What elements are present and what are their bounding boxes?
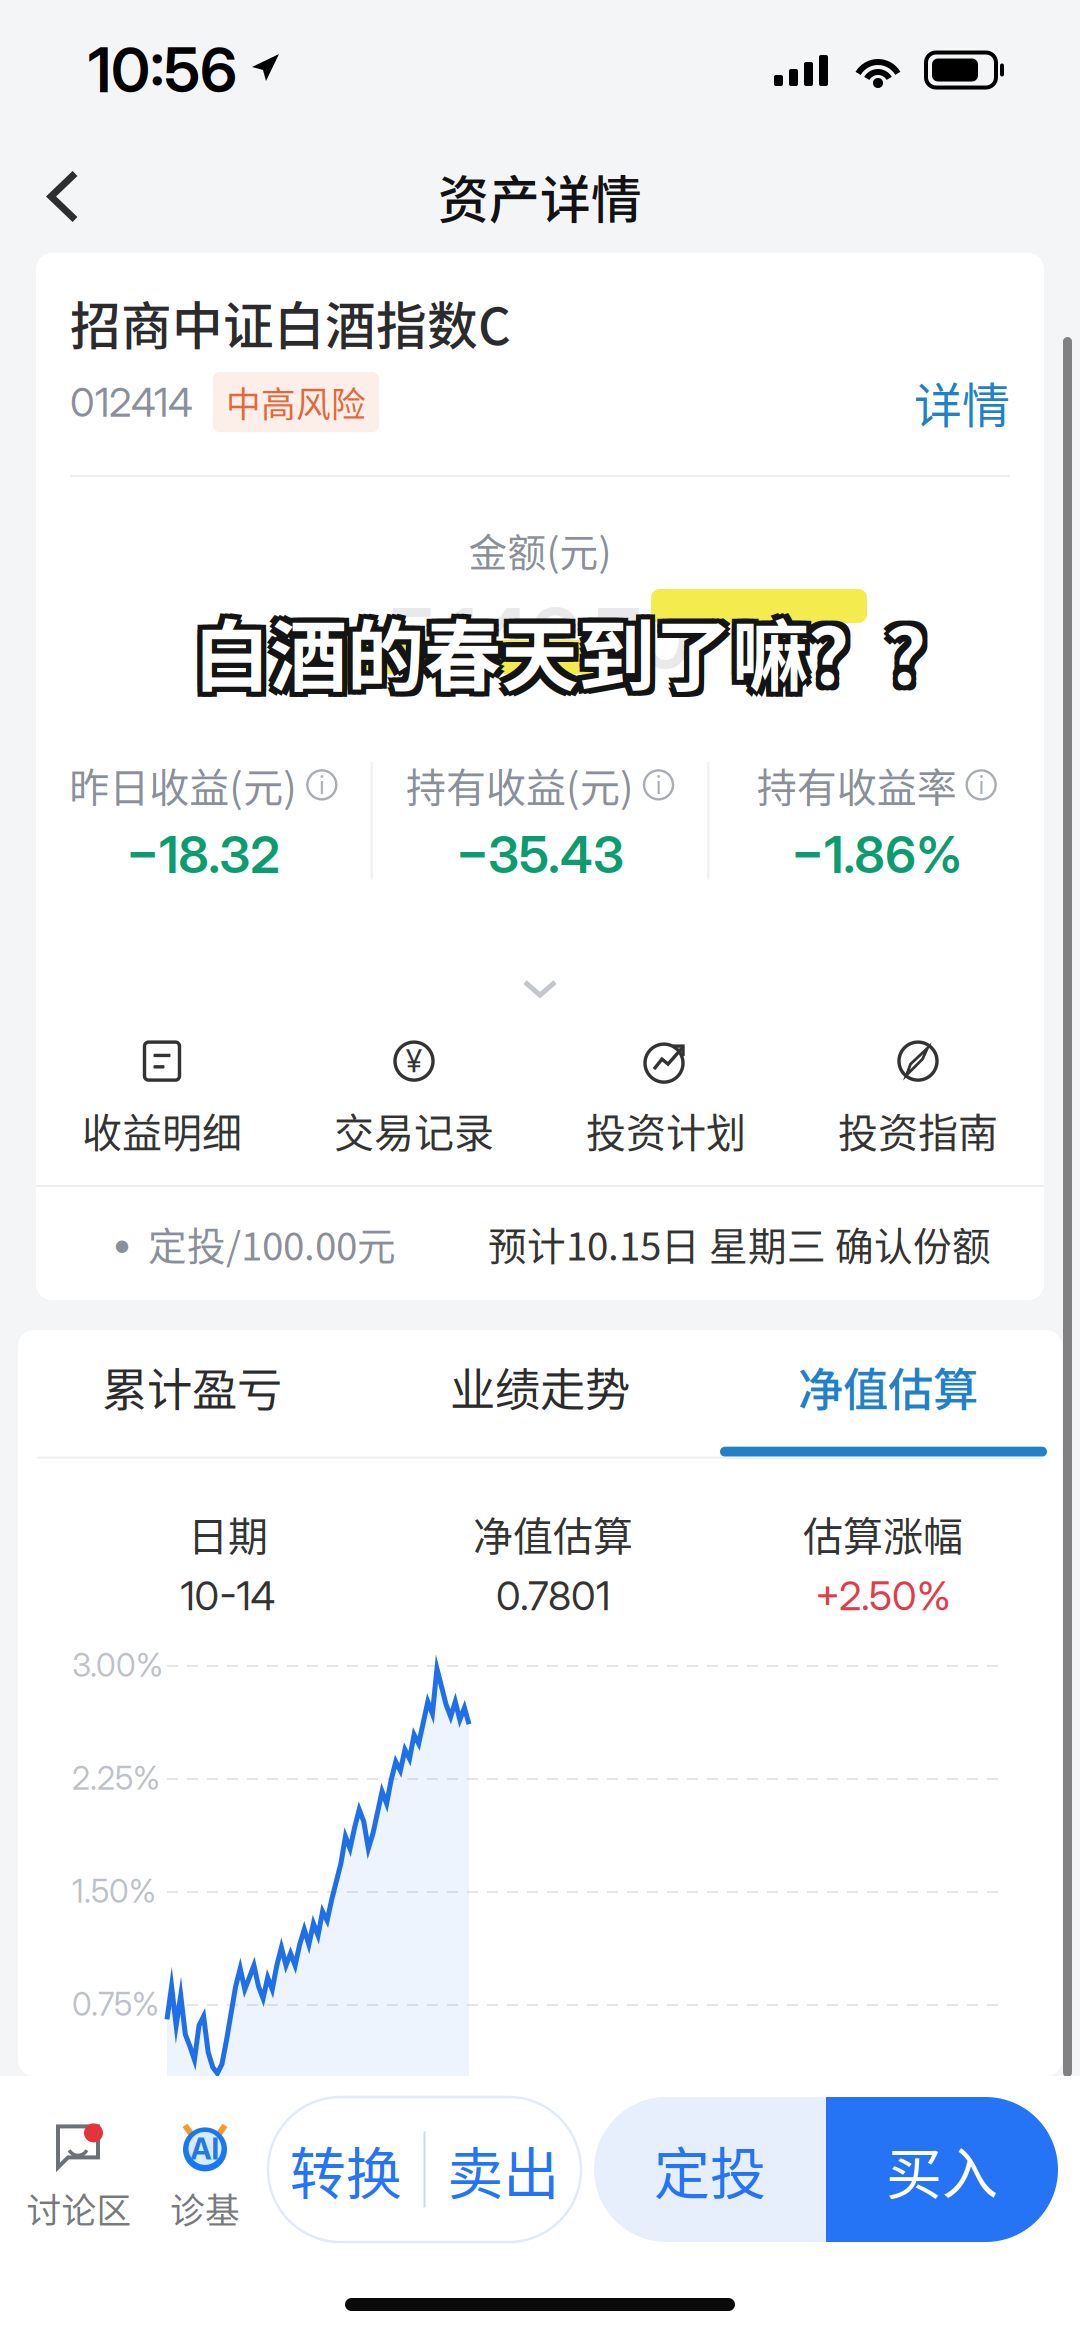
staticText: 定投 [654, 2129, 766, 2210]
staticText: 交易记录 [334, 1101, 494, 1159]
staticText: 白酒的春天到了嘛？？ [198, 600, 968, 712]
button[interactable]: 净值估算 [714, 1334, 1062, 1457]
staticText: ¥ [406, 1043, 422, 1080]
button[interactable]: 投资指南 [792, 1040, 1044, 1159]
staticText: 012414 [70, 378, 193, 426]
staticText: 投资指南 [838, 1101, 998, 1159]
staticText: 白酒的春天到了嘛？？ [193, 595, 963, 707]
staticText: 白酒的春天到了嘛？？ [188, 600, 958, 712]
button[interactable]: 转换 [268, 2097, 581, 2242]
staticText: 金额(元) [468, 522, 611, 578]
button[interactable]: 买入 [826, 2097, 1058, 2242]
staticText: 净值估算 [798, 1354, 978, 1420]
staticText: 1.50% [72, 1872, 156, 1910]
staticText: −18.32 [126, 824, 280, 885]
staticText: 白酒的春天到了嘛？？ [188, 590, 958, 702]
button[interactable]: 收益明细 [36, 1040, 288, 1159]
staticText: 5,143.70 [388, 588, 692, 688]
staticText: 预计10.15日 星期三 确认份额 [488, 1215, 991, 1271]
staticText: • [112, 1219, 132, 1268]
button[interactable]: 展开 [462, 963, 618, 1014]
staticText: 净值估算 [473, 1505, 633, 1563]
staticText: 0.7801 [496, 1572, 610, 1620]
staticText: 昨日收益(元) [69, 756, 297, 814]
button[interactable]: 业绩走势 [366, 1334, 714, 1457]
staticText: 2.25% [72, 1759, 160, 1797]
button[interactable]: 详情 [914, 367, 1010, 437]
staticText: 招商中证白酒指数C [70, 286, 511, 359]
staticText: 持有收益率 [757, 756, 957, 814]
staticText: 转换 [290, 2129, 402, 2210]
staticText: −1.86% [791, 824, 962, 885]
staticText: 资产详情 [438, 160, 642, 233]
staticText: 持有收益(元) [406, 756, 634, 814]
button[interactable]: 累计盈亏 [18, 1334, 366, 1457]
staticText: 卖出 [447, 2129, 559, 2210]
staticText: 白酒的春天到了嘛？？ [198, 595, 968, 707]
staticText: i [979, 769, 984, 800]
staticText: 估算涨幅 [803, 1505, 963, 1563]
staticText: 白酒的春天到了嘛？？ [193, 590, 963, 702]
button[interactable]: 返回 [24, 155, 102, 237]
button[interactable]: AI [142, 2105, 268, 2234]
button[interactable]: 投资计划 [540, 1040, 792, 1159]
staticText: AI [190, 2131, 219, 2167]
staticText: 投资计划 [586, 1101, 746, 1159]
staticText: 诊基 [170, 2183, 240, 2234]
button[interactable]: 讨论区 [16, 2105, 142, 2234]
button[interactable]: 定投 [594, 2097, 826, 2242]
staticText: 白酒的春天到了嘛？？ [193, 600, 963, 712]
staticText: 10:56 [88, 33, 237, 107]
staticText: i [319, 769, 324, 800]
staticText: 10-14 [180, 1572, 275, 1620]
staticText: 买入 [886, 2129, 998, 2210]
staticText: 讨论区 [26, 2183, 131, 2234]
staticText: 中高风险 [226, 377, 366, 427]
staticText: 3.00% [72, 1646, 163, 1684]
staticText: 0.75% [72, 1985, 159, 2023]
staticText: 日期 [188, 1505, 268, 1563]
staticText: 详情 [914, 367, 1010, 437]
staticText: 累计盈亏 [102, 1354, 282, 1420]
staticText: 白酒的春天到了嘛？？ [188, 595, 958, 707]
staticText: +2.50% [815, 1572, 951, 1620]
staticText: 白酒的春天到了嘛？？ [198, 590, 968, 702]
staticText: i [656, 769, 661, 800]
staticText: 定投/100.00元 [148, 1215, 396, 1271]
staticText: 业绩走势 [450, 1354, 630, 1420]
button[interactable]: ¥ [288, 1040, 540, 1159]
staticText: 收益明细 [82, 1101, 242, 1159]
staticText: −35.43 [456, 824, 624, 885]
